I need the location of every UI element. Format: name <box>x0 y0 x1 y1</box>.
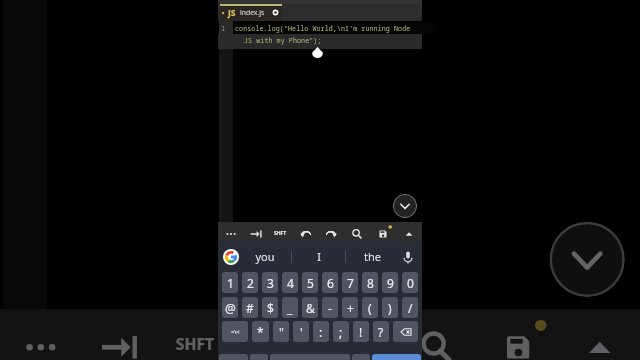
button[interactable]: Tab <box>243 225 268 242</box>
button[interactable]: _ <box>282 297 298 318</box>
staticText: $ <box>267 300 274 316</box>
button[interactable]: ! <box>353 321 369 342</box>
button[interactable]: / <box>402 297 418 318</box>
staticText: _ <box>287 300 293 316</box>
staticText: 4 <box>287 275 294 291</box>
button[interactable]: ABC <box>219 354 248 360</box>
button[interactable]: 8 <box>362 272 378 293</box>
button[interactable]: =\< <box>222 321 248 342</box>
button[interactable]: Search <box>344 225 370 242</box>
button[interactable]: Save <box>370 225 396 242</box>
button[interactable]: " <box>273 321 289 342</box>
button[interactable]: 5 <box>302 272 318 293</box>
staticText: =\< <box>231 328 240 335</box>
button[interactable]: # <box>242 297 258 318</box>
button[interactable]: Collapse keyboard <box>559 319 640 360</box>
staticText: + <box>347 300 354 316</box>
button[interactable]: 0 <box>402 272 418 293</box>
button[interactable]: 7 <box>342 272 358 293</box>
button[interactable]: 3 <box>262 272 278 293</box>
button[interactable]: ; <box>333 321 349 342</box>
button[interactable]: 9 <box>382 272 398 293</box>
button[interactable]: Close tab <box>272 9 279 16</box>
staticText: ? <box>378 324 384 340</box>
button[interactable]: Undo <box>293 225 318 242</box>
staticText: JS <box>228 7 236 19</box>
button[interactable]: Save <box>477 319 559 360</box>
button[interactable]: Tab <box>78 319 157 360</box>
button[interactable]: Voice input <box>399 248 417 266</box>
button[interactable]: More options <box>218 225 243 242</box>
staticText: 7 <box>347 275 354 291</box>
staticText: : <box>319 324 323 340</box>
staticText: ; <box>339 324 343 340</box>
button[interactable]: JS <box>218 2 422 23</box>
button[interactable]: ( <box>362 297 378 318</box>
button[interactable]: Comma <box>250 354 268 360</box>
button[interactable]: Redo <box>318 225 344 242</box>
staticText: JS with my Phone"); <box>244 36 322 45</box>
button[interactable]: - <box>322 297 338 318</box>
button[interactable]: I <box>292 241 345 272</box>
staticText: 5 <box>307 275 314 291</box>
staticText: # <box>246 300 254 316</box>
button[interactable]: Backspace <box>393 321 418 342</box>
button[interactable]: Collapse keyboard <box>396 225 422 242</box>
button[interactable]: 2 <box>242 272 258 293</box>
staticText: ' <box>300 324 303 340</box>
staticText: 1 <box>221 24 226 34</box>
button[interactable]: Google <box>223 249 239 265</box>
staticText: / <box>408 300 413 316</box>
button[interactable]: ' <box>293 321 309 342</box>
staticText: 3 <box>267 275 274 291</box>
staticText: ) <box>388 300 392 316</box>
staticText: @ <box>225 300 236 316</box>
button[interactable]: ) <box>382 297 398 318</box>
button[interactable]: Undo <box>235 319 314 360</box>
staticText: console.log("Hello World,\nI'm running N… <box>235 24 411 33</box>
staticText: I <box>317 249 321 264</box>
button[interactable]: + <box>342 297 358 318</box>
button[interactable]: 4 <box>282 272 298 293</box>
staticText: 2 <box>247 275 254 291</box>
button[interactable]: ? <box>373 321 389 342</box>
staticText: 1 <box>227 275 234 291</box>
button[interactable]: $ <box>262 297 278 318</box>
staticText: 6 <box>327 275 334 291</box>
button[interactable]: SHFT <box>157 319 235 360</box>
staticText: you <box>255 249 275 264</box>
button[interactable]: @ <box>222 297 238 318</box>
staticText: ! <box>359 324 363 340</box>
staticText: " <box>279 324 284 340</box>
button[interactable]: : <box>313 321 329 342</box>
staticText: ( <box>368 300 372 316</box>
staticText: & <box>306 300 315 316</box>
staticText: 9 <box>387 275 394 291</box>
staticText: 8 <box>367 275 374 291</box>
button[interactable]: Enter <box>372 354 421 360</box>
staticText: SHFT <box>274 230 287 237</box>
button[interactable]: the <box>346 241 399 272</box>
staticText: index.js <box>240 8 265 17</box>
button[interactable]: Scroll down <box>549 222 625 297</box>
staticText: SHFT <box>176 335 217 357</box>
staticText: 0 <box>407 275 414 291</box>
button[interactable]: Period <box>352 354 370 360</box>
staticText: * <box>257 324 264 340</box>
staticText: - <box>328 300 332 316</box>
button[interactable]: Redo <box>314 319 396 360</box>
button[interactable]: SHFT <box>268 225 293 242</box>
staticText: the <box>364 249 381 264</box>
button[interactable]: 6 <box>322 272 338 293</box>
button[interactable]: Search <box>396 319 477 360</box>
button[interactable]: More options <box>0 319 78 360</box>
button[interactable]: you <box>239 241 291 272</box>
button[interactable]: * <box>252 321 269 342</box>
button[interactable]: Scroll down <box>393 194 417 218</box>
button[interactable]: 1 <box>222 272 238 293</box>
button[interactable]: & <box>302 297 318 318</box>
